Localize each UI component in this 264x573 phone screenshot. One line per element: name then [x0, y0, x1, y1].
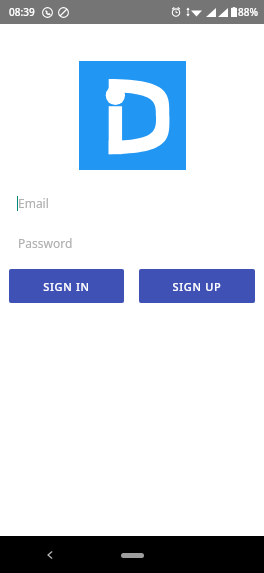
staticText: 08:39 [9, 5, 35, 19]
button[interactable]: Back [38, 543, 62, 567]
button[interactable]: Home [112, 545, 152, 565]
button[interactable]: SIGN IN [9, 269, 124, 303]
button[interactable]: SIGN UP [139, 269, 255, 303]
staticText: SIGN IN [43, 279, 90, 294]
staticText: Password [18, 235, 73, 251]
staticText: 88% [238, 5, 258, 19]
button[interactable]: Email [0, 191, 264, 215]
button[interactable]: Password [0, 231, 264, 255]
staticText: SIGN UP [172, 279, 222, 294]
staticText: Email [18, 195, 49, 211]
